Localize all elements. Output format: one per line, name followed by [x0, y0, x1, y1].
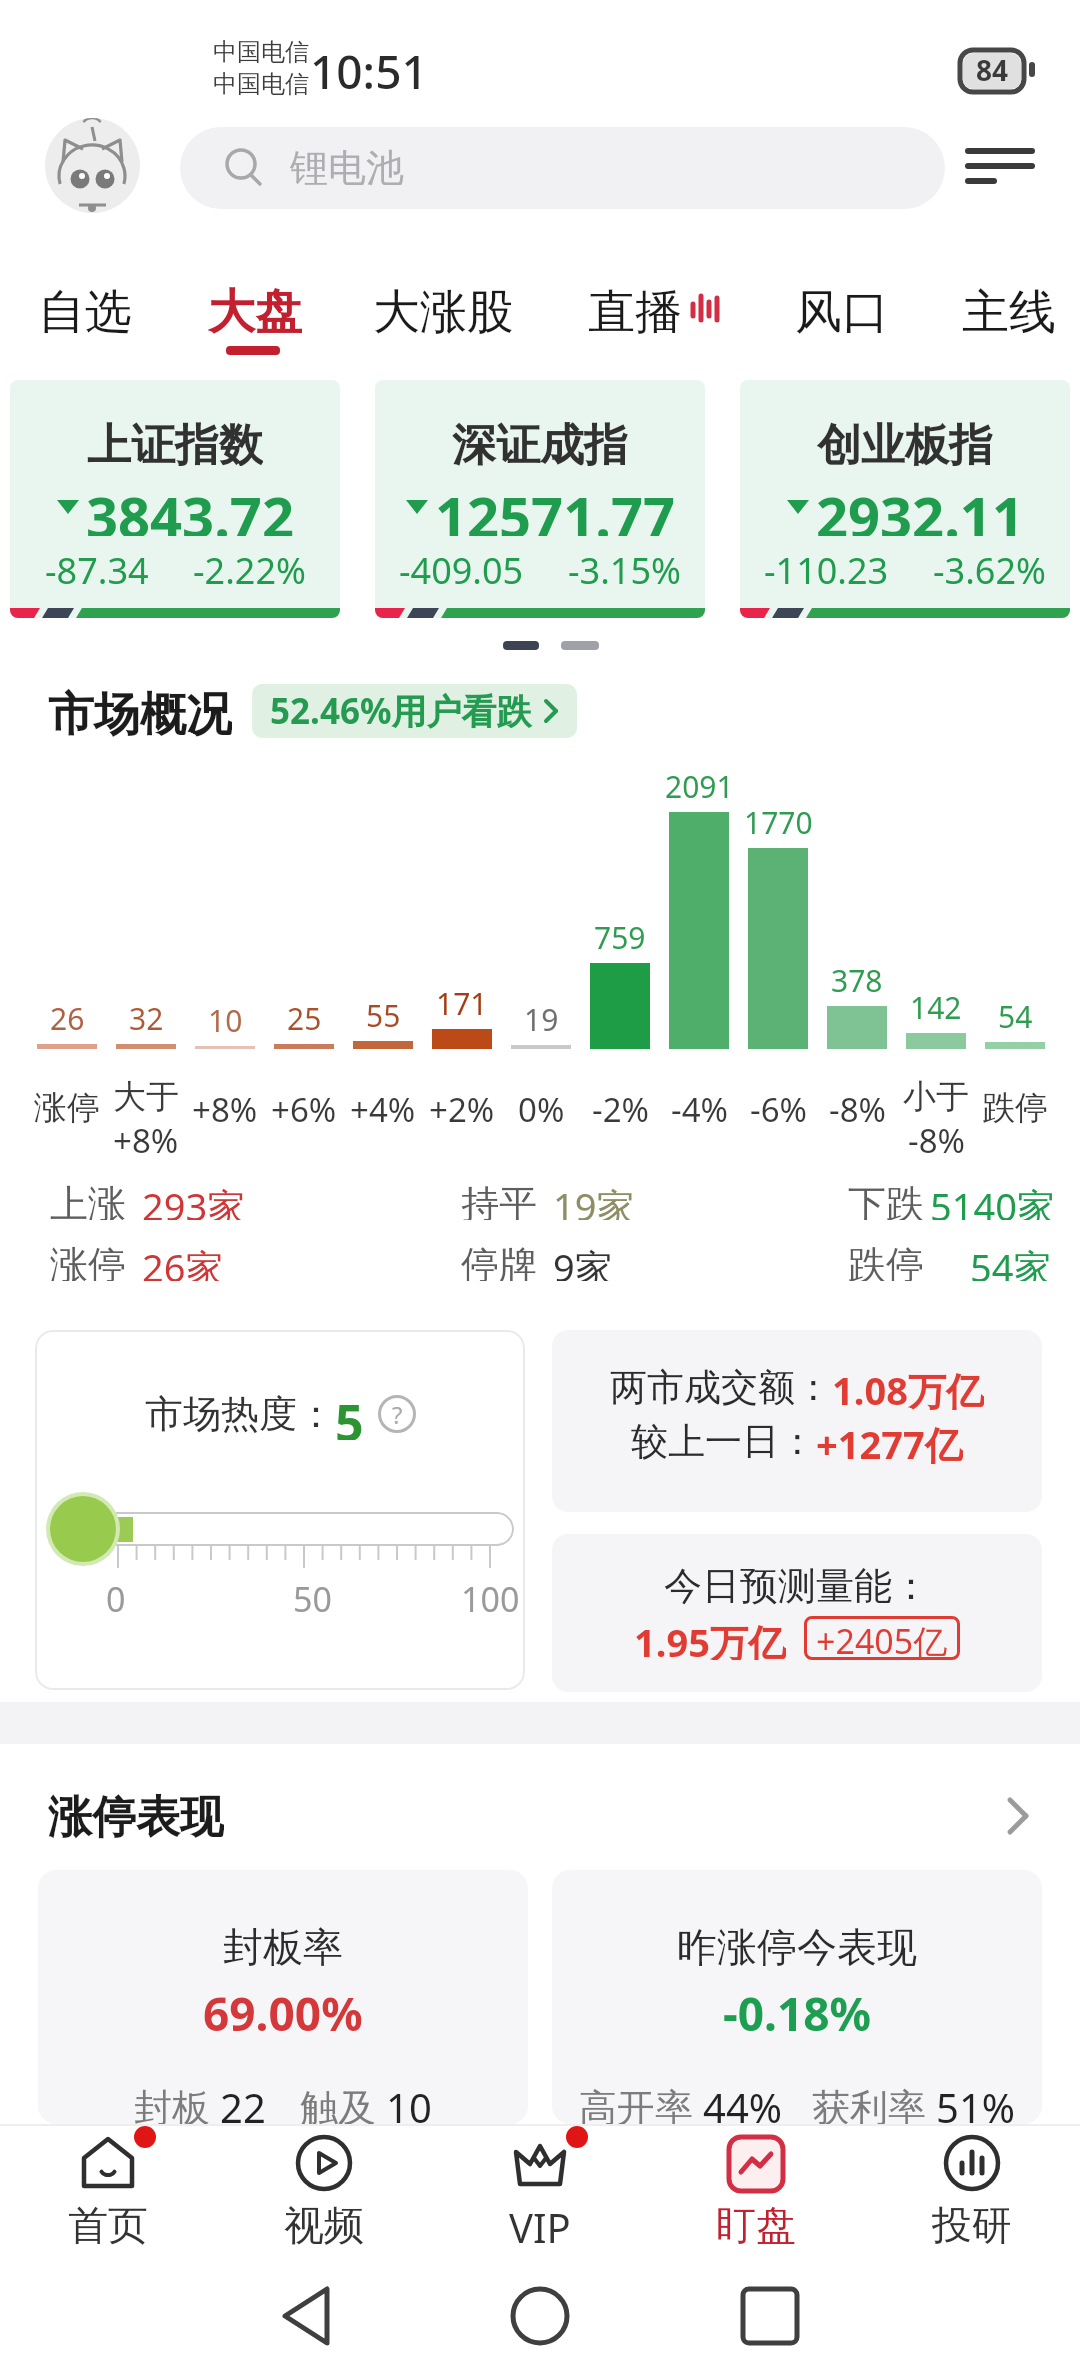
button[interactable]: 深证成指 — [375, 380, 705, 618]
button[interactable]: 自选 — [38, 283, 132, 338]
staticText: 较上一日： — [631, 1418, 816, 1464]
staticText: 293家 — [142, 1180, 246, 1220]
button[interactable]: 两市成交额： — [552, 1330, 1042, 1512]
button[interactable]: 52.46%用户看跌 — [252, 684, 577, 738]
staticText: 2932.11 — [816, 478, 1024, 536]
staticText: 市场热度： — [145, 1390, 335, 1438]
staticText: -87.34 — [45, 546, 149, 588]
staticText: 风口 — [795, 283, 889, 338]
staticText: 19家 — [553, 1180, 635, 1220]
staticText: 跌停 — [848, 1241, 924, 1281]
staticText: 封板 — [134, 2080, 220, 2124]
button[interactable]: 大涨股 — [373, 283, 514, 338]
button[interactable]: 盯盘 — [666, 2124, 846, 2264]
staticText: -2.22% — [193, 546, 306, 588]
staticText: 32 — [129, 998, 164, 1036]
staticText: 中国电信 — [213, 69, 309, 99]
button[interactable]: 市场热度： — [35, 1330, 525, 1690]
staticText: VIP — [509, 2200, 571, 2246]
staticText: -6% — [750, 1087, 807, 1127]
staticText: 52.46%用户看跌 — [270, 687, 532, 735]
staticText: -409.05 — [399, 546, 524, 588]
staticText: 跌停 — [982, 1087, 1048, 1127]
staticText: 高开率 — [579, 2080, 703, 2124]
button[interactable]: 视频 — [234, 2124, 414, 2264]
staticText: 创业板指 — [817, 418, 993, 466]
staticText: 84 — [976, 51, 1009, 89]
button[interactable]: 风口 — [795, 283, 889, 338]
staticText: 直播 — [588, 283, 682, 338]
staticText: 涨停表现 — [48, 1790, 224, 1842]
staticText: ? — [392, 1398, 403, 1431]
staticText: 大涨股 — [373, 283, 514, 338]
staticText: +4% — [350, 1087, 416, 1127]
staticText: 10 — [386, 2080, 432, 2124]
button[interactable] — [45, 118, 140, 213]
staticText: 投研 — [932, 2200, 1012, 2246]
staticText: 69.00% — [203, 1982, 363, 2032]
staticText: 大盘 — [208, 283, 302, 338]
button[interactable]: 上证指数 — [10, 380, 340, 618]
staticText: -3.62% — [933, 546, 1046, 588]
staticText: +8% — [192, 1087, 258, 1127]
staticText: 自选 — [38, 283, 132, 338]
staticText: 5 — [335, 1388, 364, 1440]
staticText: -0.18% — [723, 1982, 872, 2032]
button[interactable]: 投研 — [882, 2124, 1062, 2264]
staticText: 1.08万亿 — [832, 1364, 984, 1410]
staticText: 5140家 — [930, 1180, 1055, 1220]
staticText: 中国电信 — [213, 37, 309, 67]
staticText: +2405亿 — [816, 1618, 948, 1658]
button[interactable]: 创业板指 — [740, 380, 1070, 618]
button[interactable]: 直播 — [588, 283, 682, 338]
staticText: 54 — [998, 996, 1033, 1034]
staticText: 378 — [831, 960, 883, 998]
staticText: 171 — [436, 983, 488, 1021]
staticText: 首页 — [68, 2200, 148, 2246]
staticText: 涨停 — [34, 1087, 100, 1127]
button[interactable] — [955, 135, 1045, 195]
staticText: 大于 — [113, 1076, 179, 1116]
staticText: 44% — [703, 2080, 782, 2124]
button[interactable]: 首页 — [18, 2124, 198, 2264]
staticText: 10:51 — [310, 40, 428, 96]
staticText: 锂电池 — [290, 144, 404, 192]
button[interactable]: 今日预测量能： — [552, 1534, 1042, 1692]
staticText: +8% — [113, 1118, 179, 1158]
staticText: 深证成指 — [452, 418, 628, 466]
staticText: 上证指数 — [87, 418, 263, 466]
staticText: 9家 — [553, 1241, 613, 1281]
staticText: 0% — [518, 1087, 565, 1127]
staticText: +2% — [429, 1087, 495, 1127]
staticText: 主线 — [962, 283, 1056, 338]
staticText: 小于 — [903, 1076, 969, 1116]
staticText: 54家 — [970, 1241, 1052, 1281]
staticText: 两市成交额： — [610, 1364, 832, 1410]
staticText: 停牌 — [461, 1241, 537, 1281]
button[interactable]: 锂电池 — [180, 127, 945, 209]
staticText: 下跌 — [848, 1180, 924, 1220]
staticText: 视频 — [284, 2200, 364, 2246]
button[interactable]: 大盘 — [208, 283, 302, 338]
staticText: 10 — [208, 1000, 243, 1038]
staticText: -8% — [908, 1118, 965, 1158]
staticText: 封板率 — [223, 1922, 343, 1966]
staticText: +6% — [271, 1087, 337, 1127]
staticText: 19 — [524, 999, 559, 1037]
staticText: 1770 — [744, 802, 813, 840]
staticText: 25 — [287, 998, 322, 1036]
button[interactable]: 昨涨停今表现 — [552, 1870, 1042, 2124]
staticText: 3843.72 — [86, 478, 294, 536]
staticText: 22 — [220, 2080, 266, 2124]
staticText: 2091 — [665, 766, 734, 804]
staticText: 12571.77 — [435, 478, 675, 536]
staticText: -8% — [829, 1087, 886, 1127]
staticText: 100 — [461, 1576, 520, 1616]
staticText: 触及 — [300, 2080, 386, 2124]
staticText: 盯盘 — [716, 2200, 796, 2246]
button[interactable]: 封板率 — [38, 1870, 528, 2124]
button[interactable]: 主线 — [962, 283, 1056, 338]
button[interactable]: VIP — [450, 2124, 630, 2264]
staticText: -110.23 — [764, 546, 889, 588]
staticText: -2% — [592, 1087, 649, 1127]
